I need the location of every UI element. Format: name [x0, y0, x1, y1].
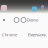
button[interactable]: Profile	[21, 17, 26, 22]
button[interactable]: Extensions	[28, 32, 46, 37]
button[interactable]: Reload	[14, 17, 19, 22]
button[interactable]: Chrome	[2, 32, 17, 37]
staticText: Extensions	[28, 32, 46, 37]
staticText: Chrome	[2, 32, 17, 37]
button[interactable]: Back	[3, 18, 5, 22]
staticText: Demo	[27, 17, 38, 23]
